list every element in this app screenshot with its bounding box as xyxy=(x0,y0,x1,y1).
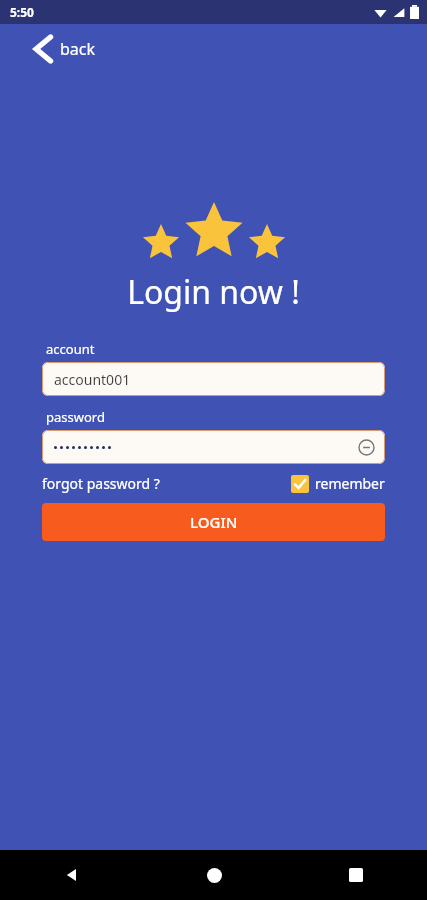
button[interactable]: Clear password xyxy=(358,439,375,456)
button[interactable]: LOGIN xyxy=(42,503,385,541)
staticText: Login now ! xyxy=(0,270,427,314)
button[interactable]: Back xyxy=(0,850,143,900)
button[interactable]: account001 xyxy=(42,362,385,396)
staticText: remember xyxy=(315,474,385,493)
staticText: back xyxy=(60,38,96,60)
staticText: LOGIN xyxy=(190,512,238,532)
staticText: account xyxy=(46,340,95,358)
staticText: 5:50 xyxy=(10,4,34,20)
staticText: password xyxy=(46,408,105,426)
button[interactable]: remember xyxy=(291,474,385,493)
button[interactable]: Recent apps xyxy=(285,850,427,900)
button[interactable]: forgot password ? xyxy=(42,474,160,493)
staticText: account001 xyxy=(54,370,131,389)
button[interactable]: Clear password xyxy=(42,430,385,464)
other: Back xyxy=(34,36,52,62)
button[interactable]: Home xyxy=(143,850,285,900)
button[interactable]: Back xyxy=(0,24,427,74)
